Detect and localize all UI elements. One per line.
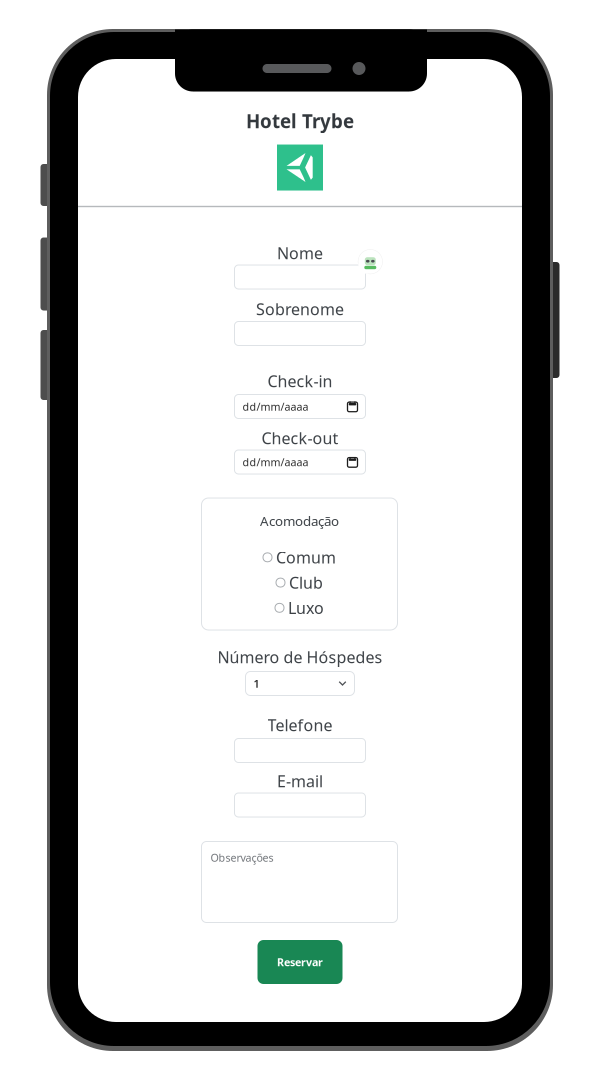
button[interactable]: Check-out (234, 450, 365, 474)
staticText: Club (289, 572, 323, 593)
staticText: Nome (277, 242, 323, 264)
staticText: Comum (276, 547, 336, 568)
staticText: Hotel Trybe (246, 109, 354, 133)
button[interactable]: Telefone (234, 738, 365, 762)
button[interactable]: Sobrenome (234, 321, 365, 345)
button[interactable]: Comum (263, 547, 336, 568)
staticText: E-mail (277, 770, 323, 792)
button[interactable]: Observações (201, 841, 397, 922)
staticText: 1 (253, 676, 259, 691)
staticText: Acomodação (260, 512, 339, 530)
staticText: Check-out (261, 427, 338, 449)
button[interactable]: E-mail (234, 793, 365, 817)
staticText: dd/mm/aaaa (242, 399, 308, 414)
staticText: Número de Hóspedes (217, 646, 382, 668)
button[interactable]: Reservar (257, 940, 342, 984)
button[interactable]: Check-in (234, 394, 365, 418)
staticText: dd/mm/aaaa (242, 455, 308, 469)
staticText: Check-in (267, 370, 332, 392)
button[interactable]: Luxo (275, 597, 324, 618)
staticText: Sobrenome (256, 298, 344, 320)
button[interactable]: Nome (234, 265, 365, 289)
button[interactable]: Número de hóspedes (245, 671, 354, 695)
button[interactable]: Club (276, 572, 323, 593)
staticText: Reservar (277, 955, 323, 969)
staticText: Observações (210, 850, 273, 865)
staticText: Luxo (288, 597, 324, 618)
staticText: Telefone (267, 714, 332, 736)
